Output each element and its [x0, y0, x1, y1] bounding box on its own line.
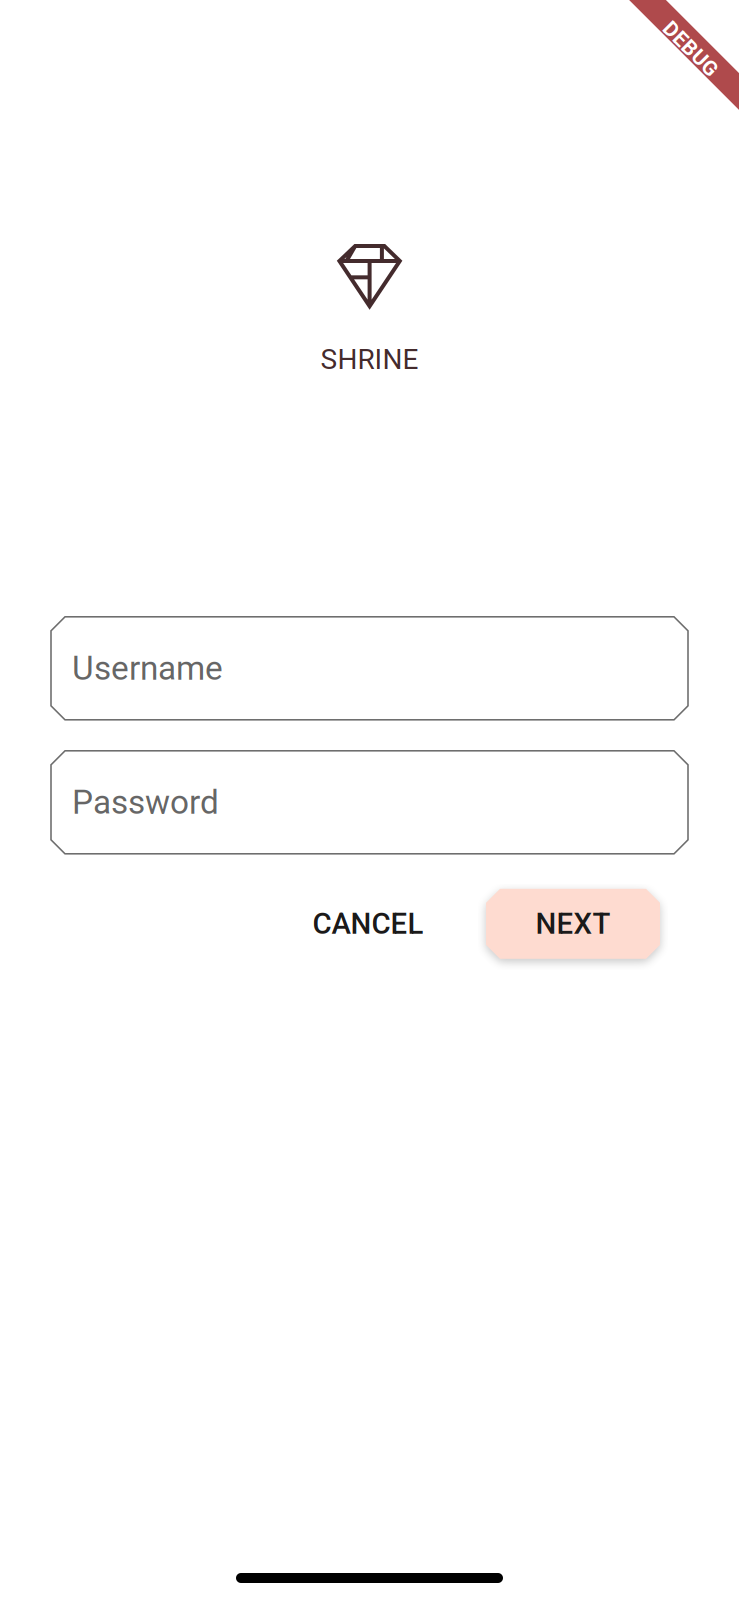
staticText: CANCEL — [312, 907, 423, 941]
staticText: DEBUG — [661, 33, 730, 58]
staticText: NEXT — [535, 907, 610, 941]
staticText: Username — [72, 649, 223, 688]
button[interactable]: NEXT — [486, 889, 660, 959]
button[interactable]: CANCEL — [294, 889, 442, 959]
staticText: SHRINE — [320, 343, 418, 376]
staticText: Password — [72, 783, 219, 822]
